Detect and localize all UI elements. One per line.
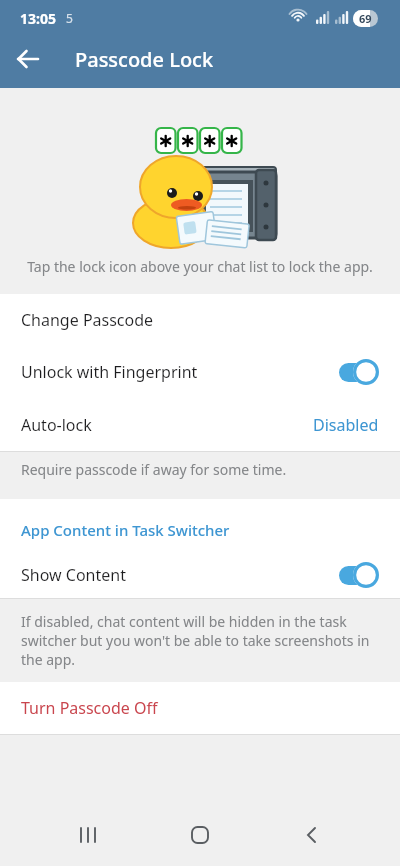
staticText: 69: [359, 11, 372, 26]
staticText: Auto-lock: [21, 414, 92, 436]
staticText: Show Content: [21, 564, 126, 586]
staticText: Require passcode if away for some time.: [21, 460, 287, 479]
button[interactable]: Unlock with Fingerprint: [0, 346, 400, 398]
button[interactable]: [172, 807, 228, 863]
staticText: Unlock with Fingerprint: [21, 361, 198, 383]
button[interactable]: [0, 36, 56, 82]
staticText: Disabled: [313, 414, 379, 436]
staticText: Tap the lock icon above your chat list t…: [0, 257, 400, 276]
button[interactable]: Turn Passcode Off: [0, 682, 400, 734]
staticText: App Content in Task Switcher: [21, 520, 230, 540]
button[interactable]: App Content in Task Switcher: [0, 499, 400, 551]
button[interactable]: Show Content: [0, 551, 400, 598]
button[interactable]: [339, 562, 379, 588]
button[interactable]: [284, 807, 340, 863]
staticText: If disabled, chat content will be hidden…: [21, 612, 379, 669]
button[interactable]: Change Passcode: [0, 294, 400, 346]
staticText: 13:05: [20, 9, 56, 28]
staticText: Change Passcode: [21, 309, 154, 331]
staticText: 5: [66, 10, 73, 26]
staticText: Turn Passcode Off: [21, 697, 158, 719]
button[interactable]: [339, 359, 379, 385]
staticText: Passcode Lock: [75, 46, 214, 73]
button[interactable]: [60, 807, 116, 863]
button[interactable]: Auto-lock: [0, 398, 400, 451]
